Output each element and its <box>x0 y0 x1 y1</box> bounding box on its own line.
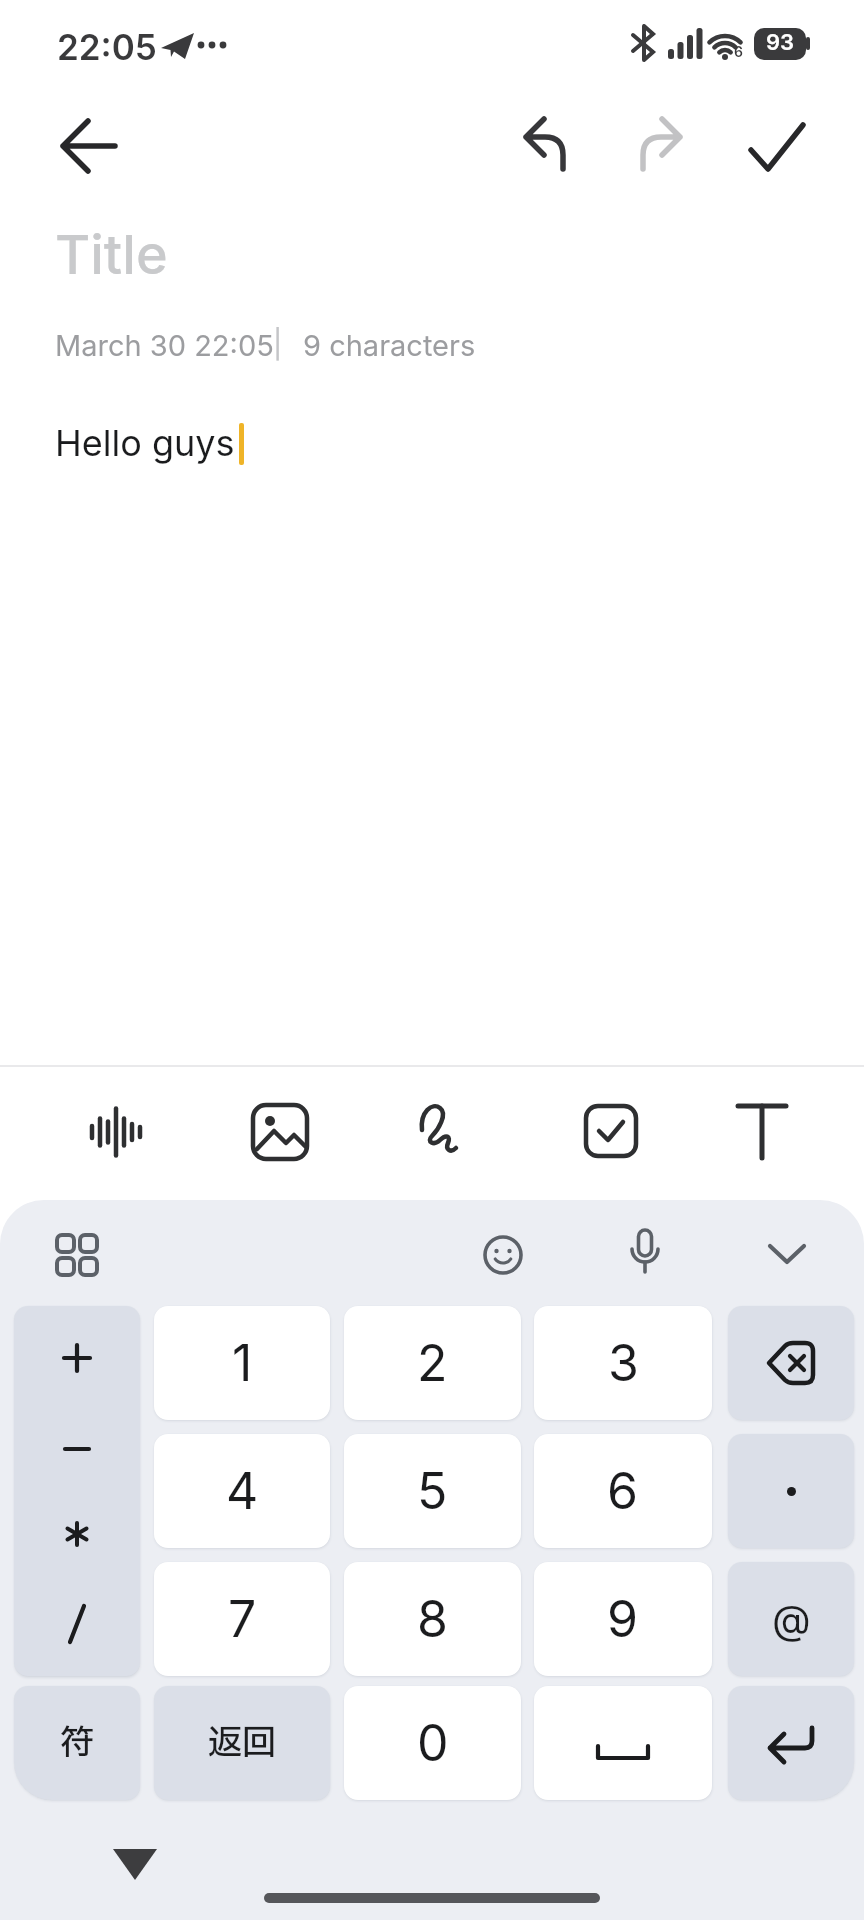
staticText: 93 <box>766 29 795 56</box>
staticText: 9 characters <box>303 328 476 363</box>
staticText: | <box>273 327 283 361</box>
staticText: 6 <box>607 1461 639 1521</box>
staticText: Hello guys <box>55 421 235 465</box>
staticText: 22:05 <box>57 26 157 68</box>
staticText: March 30 22:05 <box>55 328 274 363</box>
staticText: 6 <box>734 43 743 60</box>
staticText: 5 <box>417 1461 448 1521</box>
button[interactable] <box>757 1228 817 1288</box>
staticText: 3 <box>608 1333 639 1393</box>
button[interactable] <box>86 1102 146 1162</box>
button[interactable] <box>14 1306 140 1676</box>
button[interactable] <box>105 1840 165 1888</box>
button[interactable]: 1 <box>154 1306 330 1420</box>
button[interactable]: 6 <box>534 1434 712 1548</box>
button[interactable] <box>728 1306 854 1420</box>
button[interactable] <box>734 1102 790 1160</box>
staticText: Title <box>55 222 168 287</box>
button[interactable] <box>158 30 202 64</box>
button[interactable]: 3 <box>534 1306 712 1420</box>
button[interactable]: @ <box>728 1562 854 1676</box>
button[interactable] <box>728 1434 854 1548</box>
staticText: 返回 <box>208 1718 276 1769</box>
button[interactable] <box>473 1225 533 1285</box>
button[interactable] <box>14 1306 140 1676</box>
button[interactable] <box>516 110 576 176</box>
button[interactable] <box>52 116 124 176</box>
staticText: 2 <box>417 1333 448 1393</box>
staticText: 7 <box>228 1589 257 1649</box>
button[interactable] <box>728 1306 854 1420</box>
button[interactable] <box>620 20 820 66</box>
button[interactable] <box>615 1222 675 1282</box>
button[interactable] <box>418 1100 480 1164</box>
button[interactable]: 8 <box>344 1562 521 1676</box>
button[interactable] <box>744 116 810 178</box>
staticText: 0 <box>417 1713 449 1773</box>
button[interactable]: 0 <box>344 1686 521 1800</box>
button[interactable] <box>728 1686 854 1800</box>
button[interactable]: 2 <box>344 1306 521 1420</box>
button[interactable]: 7 <box>154 1562 330 1676</box>
staticText: 符 <box>60 1718 94 1769</box>
button[interactable]: 符 <box>14 1686 140 1800</box>
button[interactable] <box>195 38 231 52</box>
button[interactable] <box>728 1686 854 1800</box>
staticText: 8 <box>417 1589 448 1649</box>
button[interactable]: 9 <box>534 1562 712 1676</box>
staticText: 9 <box>607 1589 639 1649</box>
staticText: 4 <box>226 1461 259 1521</box>
button[interactable] <box>534 1686 712 1800</box>
button[interactable] <box>250 1102 310 1162</box>
button[interactable] <box>630 110 690 176</box>
staticText: @ <box>772 1595 811 1643</box>
button[interactable]: 4 <box>154 1434 330 1548</box>
button[interactable]: 返回 <box>154 1686 330 1800</box>
button[interactable] <box>534 1686 712 1800</box>
button[interactable]: 5 <box>344 1434 521 1548</box>
button[interactable] <box>584 1104 638 1158</box>
staticText: 1 <box>232 1333 253 1393</box>
button[interactable] <box>47 1225 107 1285</box>
